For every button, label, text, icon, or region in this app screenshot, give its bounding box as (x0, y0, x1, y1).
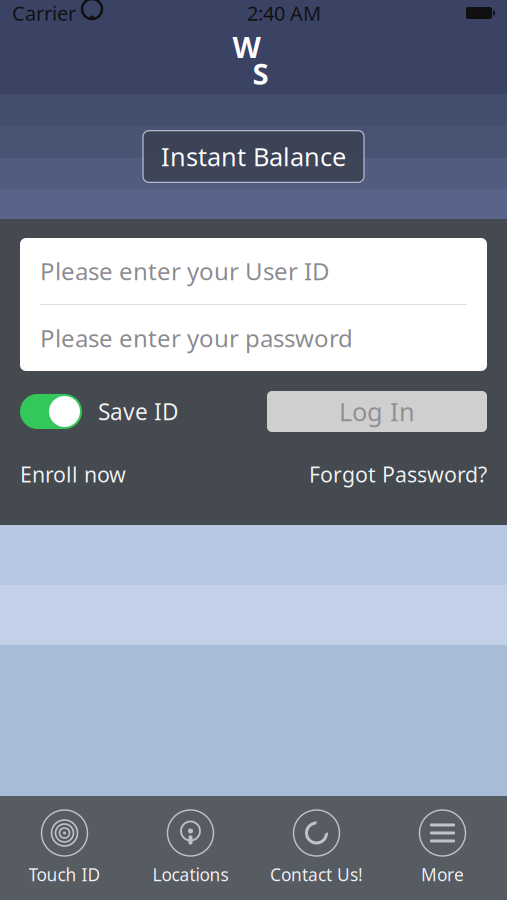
staticText: Save ID (98, 396, 179, 426)
staticText: Log In (339, 395, 415, 428)
staticText: More (421, 863, 464, 886)
staticText: Contact Us! (270, 863, 363, 886)
button[interactable]: Touch ID (1, 805, 127, 891)
staticText: Please enter your password (40, 322, 353, 354)
staticText: Carrier (12, 0, 76, 26)
button[interactable]: Save ID (20, 394, 179, 429)
button[interactable]: Enroll now (20, 460, 126, 488)
button[interactable]: Log In (267, 391, 487, 432)
staticText: 2:40 AM (247, 0, 321, 26)
button[interactable]: Please enter your User ID (20, 238, 487, 304)
staticText: Please enter your User ID (40, 255, 330, 287)
staticText: Forgot Password? (309, 460, 487, 488)
staticText: Locations (152, 863, 228, 886)
button[interactable]: Please enter your password (20, 305, 487, 371)
staticText: Touch ID (28, 863, 100, 886)
button[interactable]: Locations (127, 805, 253, 891)
staticText: Enroll now (20, 460, 126, 488)
button[interactable]: Instant Balance (143, 131, 364, 182)
button[interactable]: More (379, 805, 505, 891)
staticText: S (252, 54, 268, 93)
button[interactable]: Forgot Password? (309, 460, 487, 488)
staticText: Instant Balance (161, 140, 346, 173)
staticText: W (232, 27, 260, 66)
button[interactable]: Contact Us! (253, 805, 379, 891)
